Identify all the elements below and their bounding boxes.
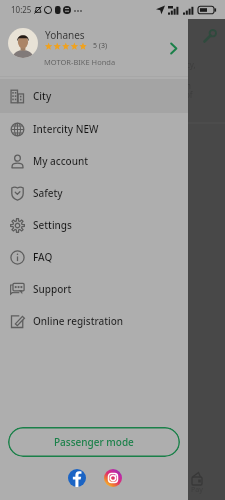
staticText: MOTOR-BIKE Honda	[44, 57, 116, 67]
staticText: Safety	[33, 186, 63, 200]
button[interactable]: Open profile	[161, 36, 185, 60]
button[interactable]: City	[0, 79, 188, 113]
button[interactable]: Yohanes	[0, 0, 188, 76]
button[interactable]: Support	[0, 273, 188, 305]
staticText: Online registration	[33, 314, 124, 328]
staticText: Pay	[191, 485, 203, 495]
staticText: 10:25	[11, 4, 32, 15]
button[interactable]: Intercity NEW	[0, 113, 188, 145]
staticText: n	[186, 80, 191, 91]
button[interactable]: Facebook	[68, 469, 86, 487]
button[interactable]: Settings	[0, 209, 188, 241]
staticText: Settings	[33, 218, 72, 232]
button[interactable]: Safety	[0, 177, 188, 209]
staticText: Passenger mode	[54, 435, 134, 449]
staticText: City	[33, 89, 52, 103]
staticText: 5 (3)	[93, 41, 108, 51]
button[interactable]: Online registration	[0, 305, 188, 337]
button[interactable]: FAQ	[0, 241, 188, 273]
staticText: Yohanes	[45, 28, 85, 42]
staticText: cy,	[186, 59, 196, 70]
staticText: My account	[33, 154, 89, 168]
button[interactable]: My account	[0, 145, 188, 177]
staticText: of	[185, 89, 193, 100]
button[interactable]: Passenger mode	[8, 427, 180, 457]
staticText: Support	[33, 282, 72, 296]
staticText: FAQ	[33, 250, 53, 264]
staticText: Intercity NEW	[33, 122, 99, 136]
button[interactable]: Instagram	[104, 469, 122, 487]
